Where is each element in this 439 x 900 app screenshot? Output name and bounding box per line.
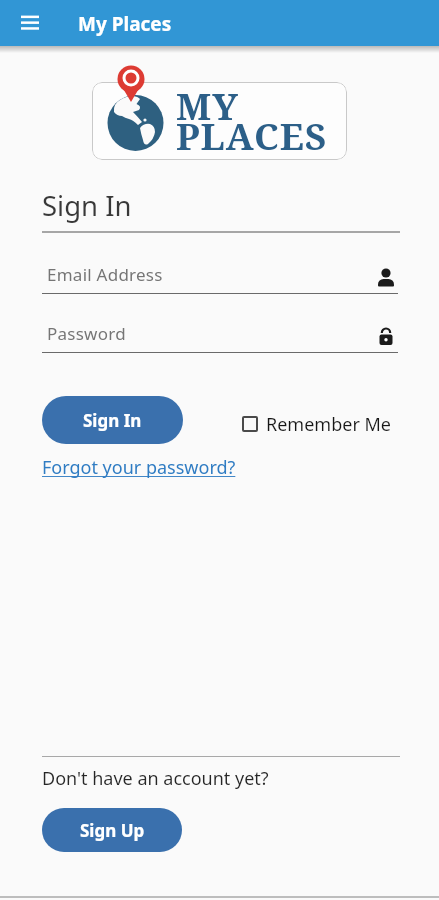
button[interactable]: Sign Up <box>42 808 182 852</box>
staticText: Password <box>47 322 126 345</box>
button[interactable]: Forgot your password? <box>42 455 236 480</box>
staticText: Don't have an account yet? <box>42 766 269 791</box>
button[interactable] <box>18 11 44 35</box>
staticText: Sign In <box>42 187 132 224</box>
staticText: Remember Me <box>266 412 391 437</box>
staticText: Sign In <box>83 409 142 432</box>
staticText: Email Address <box>47 263 163 286</box>
button[interactable]: Password <box>42 314 398 356</box>
staticText: Sign Up <box>80 819 145 842</box>
staticText: MY <box>176 80 239 130</box>
button[interactable]: Email Address <box>42 255 398 297</box>
button[interactable]: Remember Me <box>236 409 401 441</box>
button[interactable]: Sign In <box>42 396 183 444</box>
staticText: My Places <box>78 11 172 37</box>
staticText: PLACES <box>176 110 328 160</box>
